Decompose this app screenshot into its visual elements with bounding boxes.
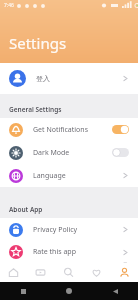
button[interactable]: Language (0, 164, 138, 187)
staticText: Dark Mode (33, 148, 112, 158)
button[interactable]: Home (0, 263, 27, 282)
staticText: Language (33, 171, 122, 181)
staticText: Settings (9, 33, 67, 53)
staticText: 登入 (36, 74, 122, 83)
button[interactable]: Rate this app (0, 241, 138, 263)
staticText: About App (9, 205, 43, 214)
button[interactable]: Search (54, 263, 82, 282)
button[interactable]: Profile (110, 263, 138, 282)
staticText: General Settings (9, 105, 62, 114)
staticText: Get Notifications (33, 125, 112, 135)
button[interactable]: Get Notifications (0, 118, 138, 141)
button[interactable]: Toggle on (112, 125, 129, 134)
button[interactable]: Videos (27, 263, 54, 282)
staticText: 7:46 (4, 2, 14, 9)
button[interactable]: 登入 (0, 63, 138, 94)
button[interactable]: Dark Mode (0, 141, 138, 164)
staticText: Rate this app (33, 247, 122, 257)
button[interactable]: Toggle off (112, 148, 129, 157)
button[interactable]: Favorites (82, 263, 110, 282)
staticText: Privacy Policy (33, 225, 122, 235)
button[interactable]: Privacy Policy (0, 218, 138, 241)
